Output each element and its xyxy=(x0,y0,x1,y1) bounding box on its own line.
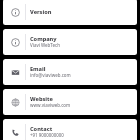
staticText: +91 9000000000 xyxy=(30,132,64,138)
staticText: Version xyxy=(30,8,52,16)
button[interactable]: Website xyxy=(3,89,137,115)
button[interactable]: Version xyxy=(3,0,137,25)
staticText: Viavi WebTech xyxy=(30,42,60,48)
button[interactable]: Contact xyxy=(3,119,137,140)
staticText: Website xyxy=(30,95,53,103)
button[interactable]: Company xyxy=(3,29,137,55)
staticText: Company xyxy=(30,35,57,43)
staticText: Contact xyxy=(30,125,53,133)
staticText: info@viaviweb.com xyxy=(30,72,71,78)
staticText: www.viaviweb.com xyxy=(30,102,71,108)
button[interactable]: Email xyxy=(3,59,137,85)
staticText: Email xyxy=(30,65,46,73)
